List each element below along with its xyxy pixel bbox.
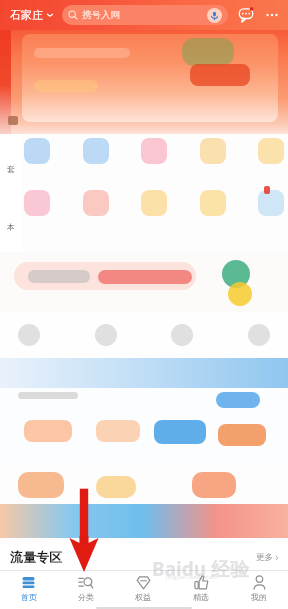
button[interactable]: 权益 <box>114 572 172 605</box>
staticText: jingyan.baidu.com <box>166 573 218 581</box>
button[interactable] <box>24 190 50 216</box>
button[interactable] <box>0 358 288 388</box>
button[interactable] <box>83 190 109 216</box>
staticText: 分类 <box>78 592 94 602</box>
button[interactable] <box>258 190 284 216</box>
button[interactable]: 首页 <box>0 572 57 605</box>
button[interactable] <box>141 138 167 164</box>
button[interactable]: 石家庄 <box>8 5 56 25</box>
button[interactable] <box>258 138 284 164</box>
button[interactable]: More options <box>262 5 282 25</box>
button[interactable] <box>200 190 226 216</box>
button[interactable] <box>18 324 40 346</box>
button[interactable] <box>95 324 117 346</box>
staticText: 权益 <box>135 592 151 602</box>
staticText: 携号入网 <box>82 9 120 21</box>
staticText: 精选 <box>193 592 209 602</box>
button[interactable]: 分类 <box>57 572 114 605</box>
button[interactable]: 精选 <box>172 572 230 605</box>
staticText: 石家庄 <box>10 8 43 22</box>
button[interactable] <box>248 324 270 346</box>
staticText: 套 <box>7 164 15 174</box>
button[interactable]: 我的 <box>230 572 288 605</box>
button[interactable] <box>141 190 167 216</box>
staticText: 更多 <box>256 552 273 563</box>
button[interactable] <box>171 324 193 346</box>
button[interactable]: Voice search <box>207 8 222 23</box>
staticText: 本 <box>7 222 15 232</box>
button[interactable]: Messages <box>236 5 256 25</box>
button[interactable] <box>22 34 278 122</box>
staticText: 流量专区 <box>10 549 62 565</box>
button[interactable] <box>200 138 226 164</box>
button[interactable] <box>83 138 109 164</box>
button[interactable]: 更多 <box>256 552 280 563</box>
button[interactable]: 携号入网 <box>62 5 228 25</box>
staticText: Baidu 经验 <box>152 556 249 582</box>
staticText: 首页 <box>21 592 37 602</box>
staticText: 我的 <box>251 592 267 602</box>
button[interactable] <box>24 138 50 164</box>
